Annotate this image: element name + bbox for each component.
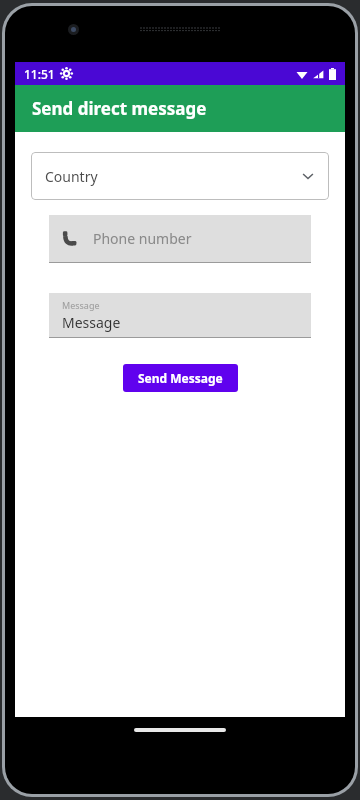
other: Expand country list (301, 169, 315, 183)
staticText: Send direct message (32, 97, 207, 120)
staticText: Message (62, 313, 121, 332)
button[interactable]: Phone (49, 215, 311, 263)
button[interactable]: Message (49, 293, 311, 338)
staticText: Phone number (93, 229, 192, 248)
other: Signal (312, 68, 324, 80)
other: Wifi (296, 68, 308, 80)
staticText: Send Message (138, 370, 223, 386)
other: Battery (329, 68, 336, 80)
button[interactable]: Country (31, 152, 329, 200)
staticText: 11:51 (24, 66, 55, 82)
other: Phone (62, 231, 77, 246)
staticText: Message (62, 299, 100, 311)
staticText: Country (45, 167, 98, 186)
button[interactable]: Send Message (123, 364, 238, 392)
other: Settings (61, 68, 72, 79)
